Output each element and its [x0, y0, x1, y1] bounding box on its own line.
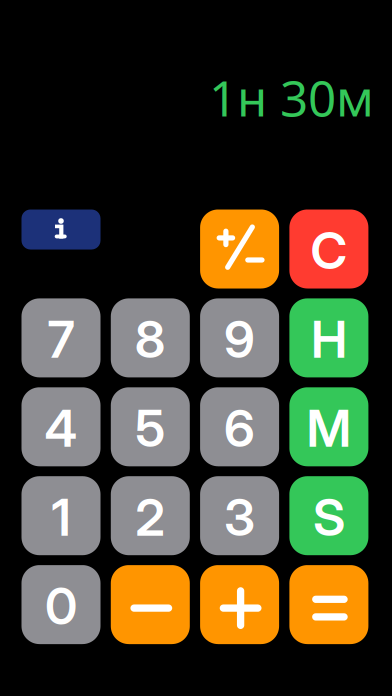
button[interactable]: 9 — [200, 298, 279, 377]
staticText: 0 — [45, 575, 77, 637]
button[interactable]: 7 — [21, 298, 100, 377]
button[interactable]: 8 — [111, 298, 190, 377]
button[interactable]: H — [289, 298, 368, 377]
staticText: 4 — [44, 398, 77, 459]
button[interactable]: 2 — [111, 476, 190, 555]
button[interactable]: 3 — [200, 476, 279, 555]
staticText: H — [311, 309, 347, 370]
button[interactable]: Toggle sign — [200, 209, 279, 288]
button[interactable]: Add — [200, 565, 279, 644]
button[interactable]: S — [289, 476, 368, 555]
staticText: S — [313, 486, 345, 548]
staticText: M — [306, 398, 351, 459]
button[interactable]: C — [289, 209, 368, 288]
button[interactable]: M — [289, 387, 368, 466]
staticText: 9 — [224, 309, 255, 370]
button[interactable]: 4 — [21, 387, 100, 466]
button[interactable]: 1 — [21, 476, 100, 555]
button[interactable]: 6 — [200, 387, 279, 466]
button[interactable]: Subtract — [111, 565, 190, 644]
staticText: 2 — [135, 486, 165, 548]
button[interactable]: 0 — [21, 565, 100, 644]
staticText: 8 — [135, 309, 166, 370]
staticText: 7 — [47, 309, 74, 370]
button[interactable]: Info — [21, 209, 100, 249]
staticText: 1 — [51, 486, 70, 548]
button[interactable]: 5 — [111, 387, 190, 466]
staticText: C — [310, 220, 347, 281]
staticText: 3 — [224, 486, 255, 548]
staticText: 6 — [224, 398, 255, 459]
button[interactable]: Equals — [289, 565, 368, 644]
staticText: 5 — [135, 398, 165, 459]
staticText: 1н 30м — [209, 64, 374, 130]
